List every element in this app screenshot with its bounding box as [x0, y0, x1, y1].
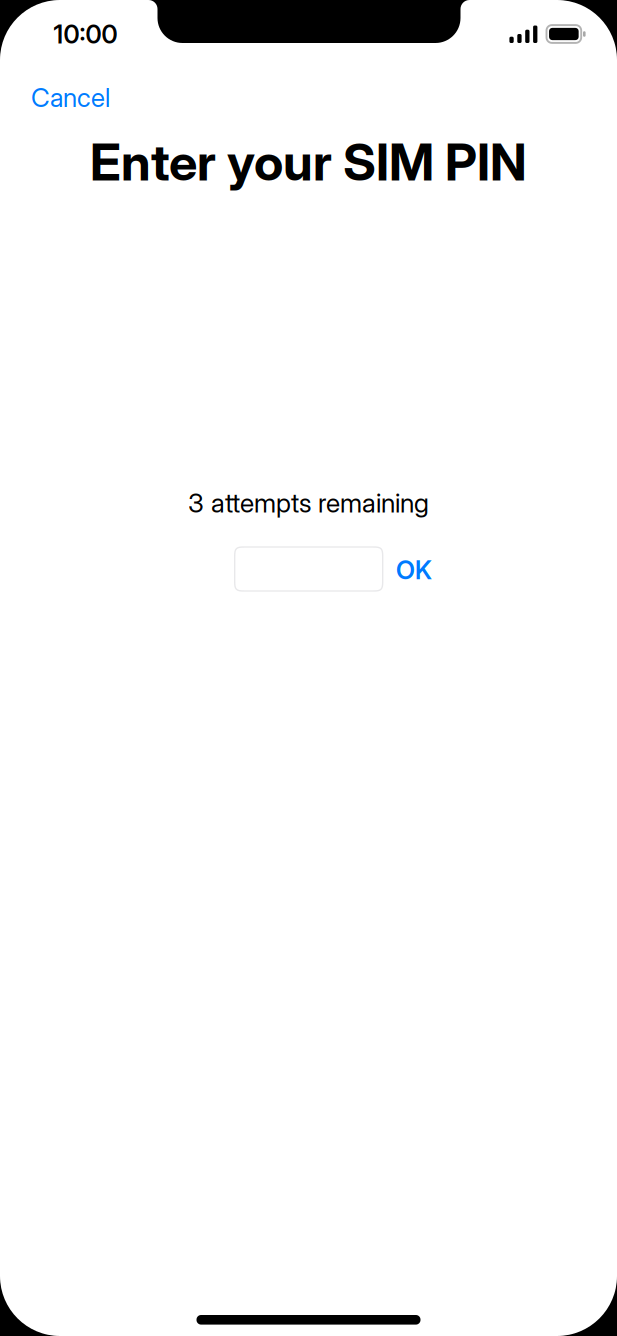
staticText: OK — [396, 555, 432, 585]
staticText: Enter your SIM PIN — [90, 131, 527, 192]
staticText: 10:00 — [53, 19, 117, 50]
button[interactable]: Cancel — [31, 74, 151, 120]
button[interactable]: SIM PIN — [235, 547, 383, 591]
staticText: Cancel — [31, 82, 110, 113]
button[interactable]: OK — [396, 548, 448, 592]
staticText: 3 attempts remaining — [188, 487, 429, 519]
